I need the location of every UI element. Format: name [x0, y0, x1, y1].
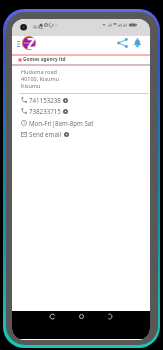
staticText: Mon-Fri|8am-8pm Sat: [29, 119, 94, 127]
button[interactable]: Notifications: [130, 36, 144, 50]
staticText: 40100, Kisumu: [21, 75, 60, 82]
button[interactable]: Menu: [12, 37, 25, 50]
staticText: 741153238: [29, 96, 61, 104]
button[interactable]: Home: [75, 310, 87, 322]
staticText: Send email: [29, 130, 62, 138]
button[interactable]: Send email: [16, 129, 136, 139]
button[interactable]: Mon-Fri|8am-8pm Sat: [16, 118, 136, 128]
button[interactable]: Recents: [103, 310, 115, 322]
staticText: Huduma road: [21, 68, 57, 75]
button[interactable]: Gomes agency ltd: [12, 56, 150, 65]
button[interactable]: Share: [115, 36, 129, 50]
button[interactable]: Back: [46, 310, 58, 322]
staticText: 738233715: [29, 107, 61, 115]
button[interactable]: 741153238: [16, 95, 136, 105]
button[interactable]: 738233715: [16, 106, 136, 116]
staticText: 4:42: [33, 23, 44, 30]
staticText: Gomes agency ltd: [23, 56, 66, 63]
staticText: Kisumu: [21, 82, 41, 89]
